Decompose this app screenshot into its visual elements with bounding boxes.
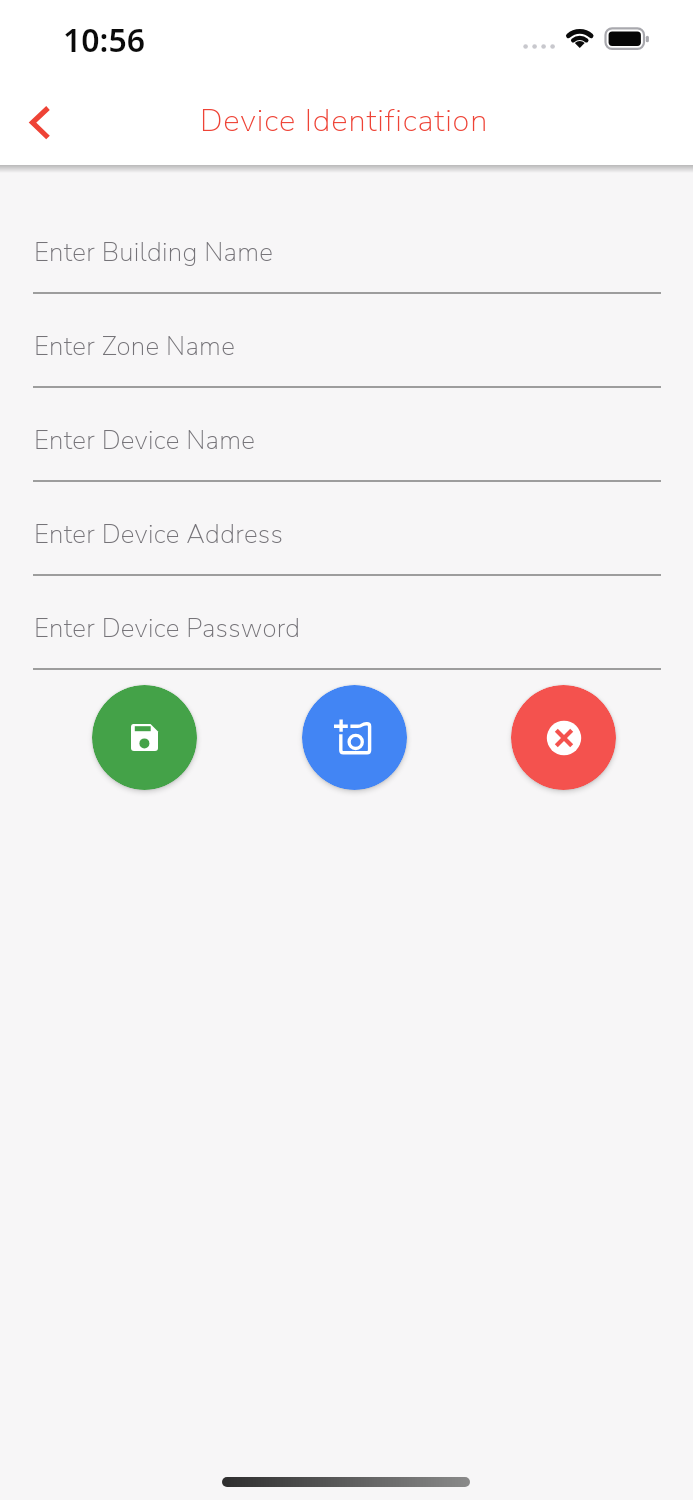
button[interactable] <box>302 685 407 790</box>
staticText: Enter Building Name <box>34 235 274 270</box>
staticText: Enter Device Name <box>34 423 256 458</box>
staticText: Enter Device Address <box>34 517 284 552</box>
staticText: Enter Device Password <box>34 611 301 646</box>
button[interactable] <box>92 685 197 790</box>
button[interactable] <box>6 88 68 154</box>
staticText: 10:56 <box>63 18 146 62</box>
staticText: Device Identification <box>200 100 489 142</box>
staticText: Enter Zone Name <box>34 329 236 364</box>
button[interactable] <box>511 685 616 790</box>
